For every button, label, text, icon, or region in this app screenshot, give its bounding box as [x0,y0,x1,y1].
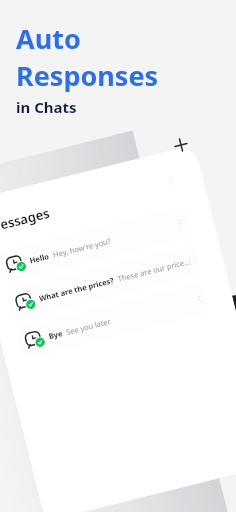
button[interactable]: Bye [14,281,212,360]
staticText: See you later [65,316,112,337]
staticText: Hey, how're you? [52,235,112,260]
staticText: Auto [16,20,81,57]
staticText: Responses [16,57,159,94]
other: More options [178,219,183,228]
button[interactable]: Add [170,134,192,156]
staticText: Messages [0,204,52,236]
staticText: What are the prices? [38,275,115,303]
staticText: Bye [47,328,63,341]
button[interactable]: Hello [0,205,193,284]
other: More options [188,257,193,266]
other: More options [197,294,202,304]
staticText: in Chats [16,97,77,117]
staticText: These are our prices 1. Ite... [117,256,191,284]
staticText: Hello [29,251,50,265]
button[interactable]: Messages [0,162,183,246]
button[interactable]: What are the prices? [4,243,202,322]
other: More options [169,177,174,188]
